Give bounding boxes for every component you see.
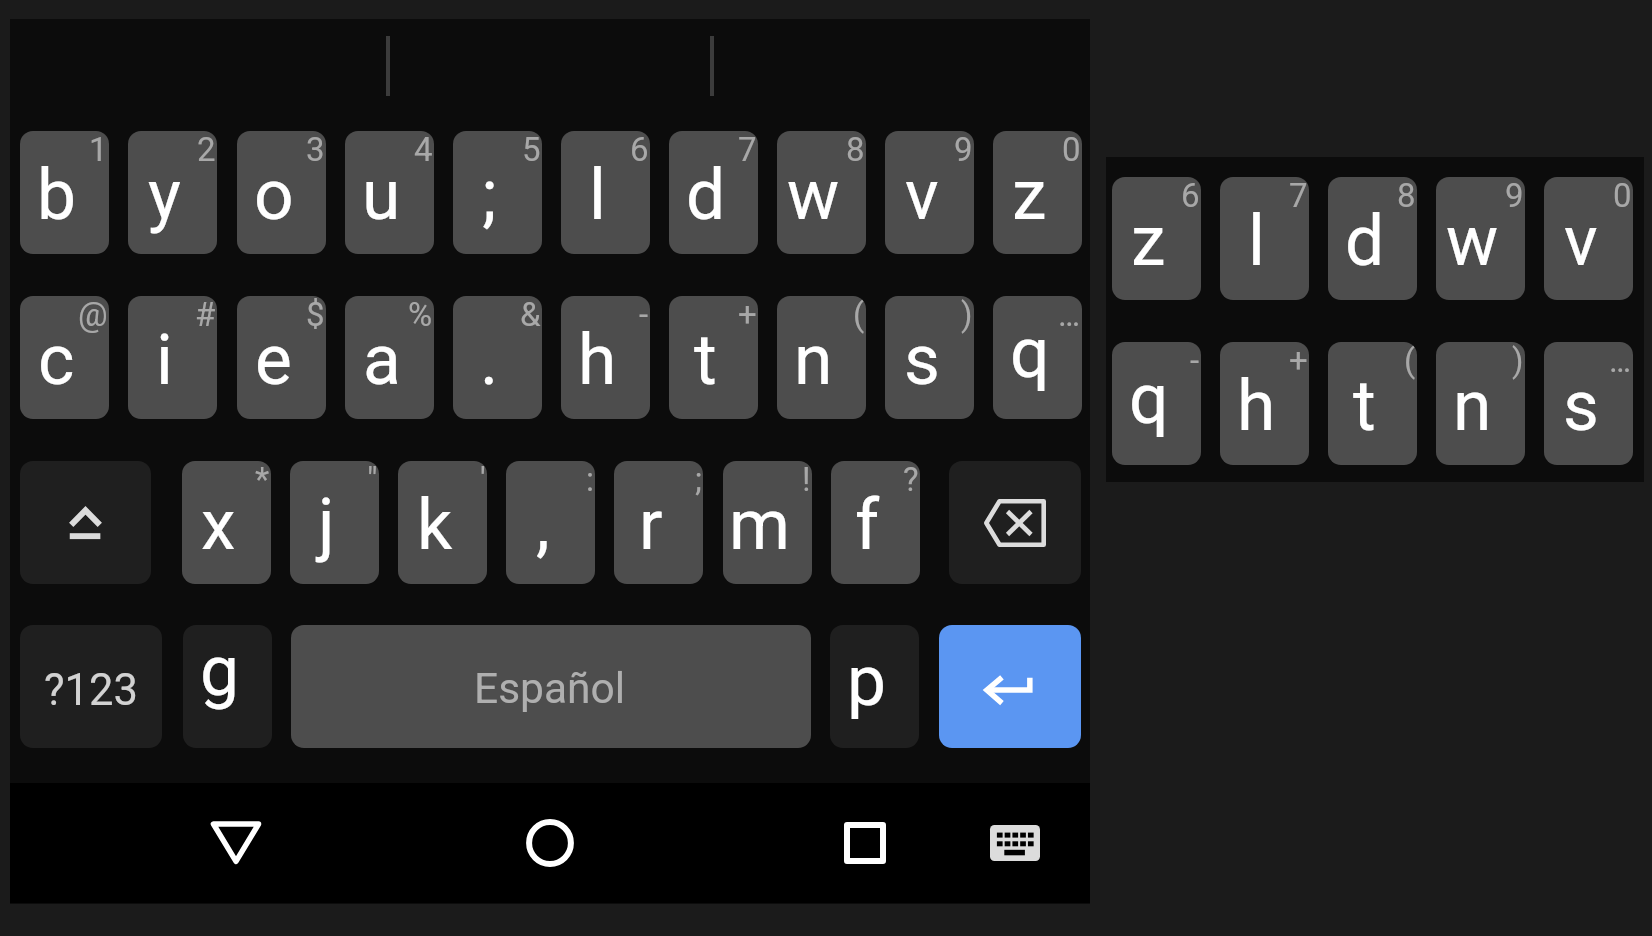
staticText: a (363, 320, 401, 401)
button[interactable]: q (1112, 342, 1201, 465)
staticText: d (1345, 201, 1385, 282)
staticText: 7 (738, 131, 757, 169)
button[interactable]: a (345, 296, 434, 419)
button[interactable]: o (237, 131, 326, 254)
staticText: w (787, 155, 840, 236)
button[interactable]: p (830, 625, 919, 748)
button[interactable]: h (1220, 342, 1309, 465)
button[interactable]: Space (291, 625, 811, 748)
staticText: 8 (846, 131, 865, 169)
staticText: ( (853, 296, 865, 334)
button[interactable]: v (885, 131, 974, 254)
button[interactable]: y (128, 131, 217, 254)
staticText: z (1012, 155, 1047, 236)
button[interactable]: Enter (939, 625, 1081, 748)
button[interactable]: w (777, 131, 866, 254)
button[interactable]: k (398, 461, 487, 584)
staticText: c (38, 320, 75, 401)
staticText: m (729, 485, 790, 566)
staticText: g (200, 631, 240, 712)
staticText: v (905, 155, 939, 236)
staticText: ?123 (44, 665, 138, 716)
staticText: n (1453, 366, 1492, 447)
staticText: h (1237, 366, 1276, 447)
staticText: d (686, 155, 726, 236)
button[interactable]: u (345, 131, 434, 254)
button[interactable]: ; (453, 131, 542, 254)
staticText: 1 (89, 131, 108, 169)
button[interactable]: l (561, 131, 650, 254)
staticText: ! (802, 461, 811, 499)
button[interactable]: m (723, 461, 812, 584)
button[interactable]: t (669, 296, 758, 419)
staticText: " (367, 461, 378, 499)
button[interactable]: g (183, 625, 272, 748)
button[interactable]: s (1544, 342, 1633, 465)
staticText: ( (1404, 342, 1416, 380)
button[interactable]: v (1544, 177, 1633, 300)
staticText: j (318, 484, 335, 565)
button[interactable]: Home (500, 793, 600, 893)
staticText: s (904, 320, 940, 401)
button[interactable]: c (20, 296, 109, 419)
staticText: : (586, 461, 594, 499)
staticText: , (536, 485, 550, 566)
staticText: + (738, 296, 757, 334)
button[interactable]: Recent apps (815, 793, 915, 893)
button[interactable]: s (885, 296, 974, 419)
button[interactable]: z (1112, 177, 1201, 300)
button[interactable]: j (290, 461, 379, 584)
staticText: n (794, 320, 833, 401)
staticText: z (1131, 201, 1166, 282)
button[interactable]: q (993, 296, 1082, 419)
button[interactable]: d (1328, 177, 1417, 300)
staticText: 0 (1613, 177, 1632, 215)
staticText: k (417, 485, 453, 566)
staticText: ' (480, 461, 486, 499)
button[interactable]: b (20, 131, 109, 254)
button[interactable]: n (1436, 342, 1525, 465)
button[interactable]: . (453, 296, 542, 419)
staticText: t (1353, 366, 1376, 447)
button[interactable]: Shift (20, 461, 151, 584)
staticText: Español (474, 664, 626, 714)
staticText: w (1446, 201, 1499, 282)
button[interactable]: w (1436, 177, 1525, 300)
staticText: h (578, 320, 617, 401)
button[interactable]: t (1328, 342, 1417, 465)
staticText: 9 (1505, 177, 1524, 215)
button[interactable]: , (506, 461, 595, 584)
staticText: - (1190, 342, 1200, 380)
staticText: ? (903, 461, 919, 499)
staticText: @ (78, 296, 108, 334)
staticText: l (1248, 201, 1265, 282)
staticText: - (639, 296, 649, 334)
button[interactable]: Hide keyboard (186, 793, 286, 893)
button[interactable]: e (237, 296, 326, 419)
staticText: r (639, 485, 663, 566)
button[interactable]: Switch keyboard (965, 793, 1065, 893)
button[interactable]: r (614, 461, 703, 584)
staticText: ; (482, 155, 497, 236)
button[interactable]: n (777, 296, 866, 419)
staticText: 3 (306, 131, 325, 169)
button[interactable]: x (182, 461, 271, 584)
staticText: 4 (414, 131, 433, 169)
button[interactable]: l (1220, 177, 1309, 300)
staticText: … (1609, 342, 1632, 380)
button[interactable]: Backspace (949, 461, 1081, 584)
staticText: + (1289, 342, 1308, 380)
staticText: 2 (197, 131, 216, 169)
button[interactable]: h (561, 296, 650, 419)
button[interactable]: Symbols (20, 625, 162, 748)
staticText: s (1563, 366, 1599, 447)
staticText: 6 (630, 131, 649, 169)
button[interactable]: f (831, 461, 920, 584)
button[interactable]: z (993, 131, 1082, 254)
staticText: l (589, 155, 606, 236)
staticText: . (480, 320, 499, 401)
button[interactable]: i (128, 296, 217, 419)
staticText: ) (961, 296, 973, 334)
staticText: x (201, 485, 236, 566)
button[interactable]: d (669, 131, 758, 254)
